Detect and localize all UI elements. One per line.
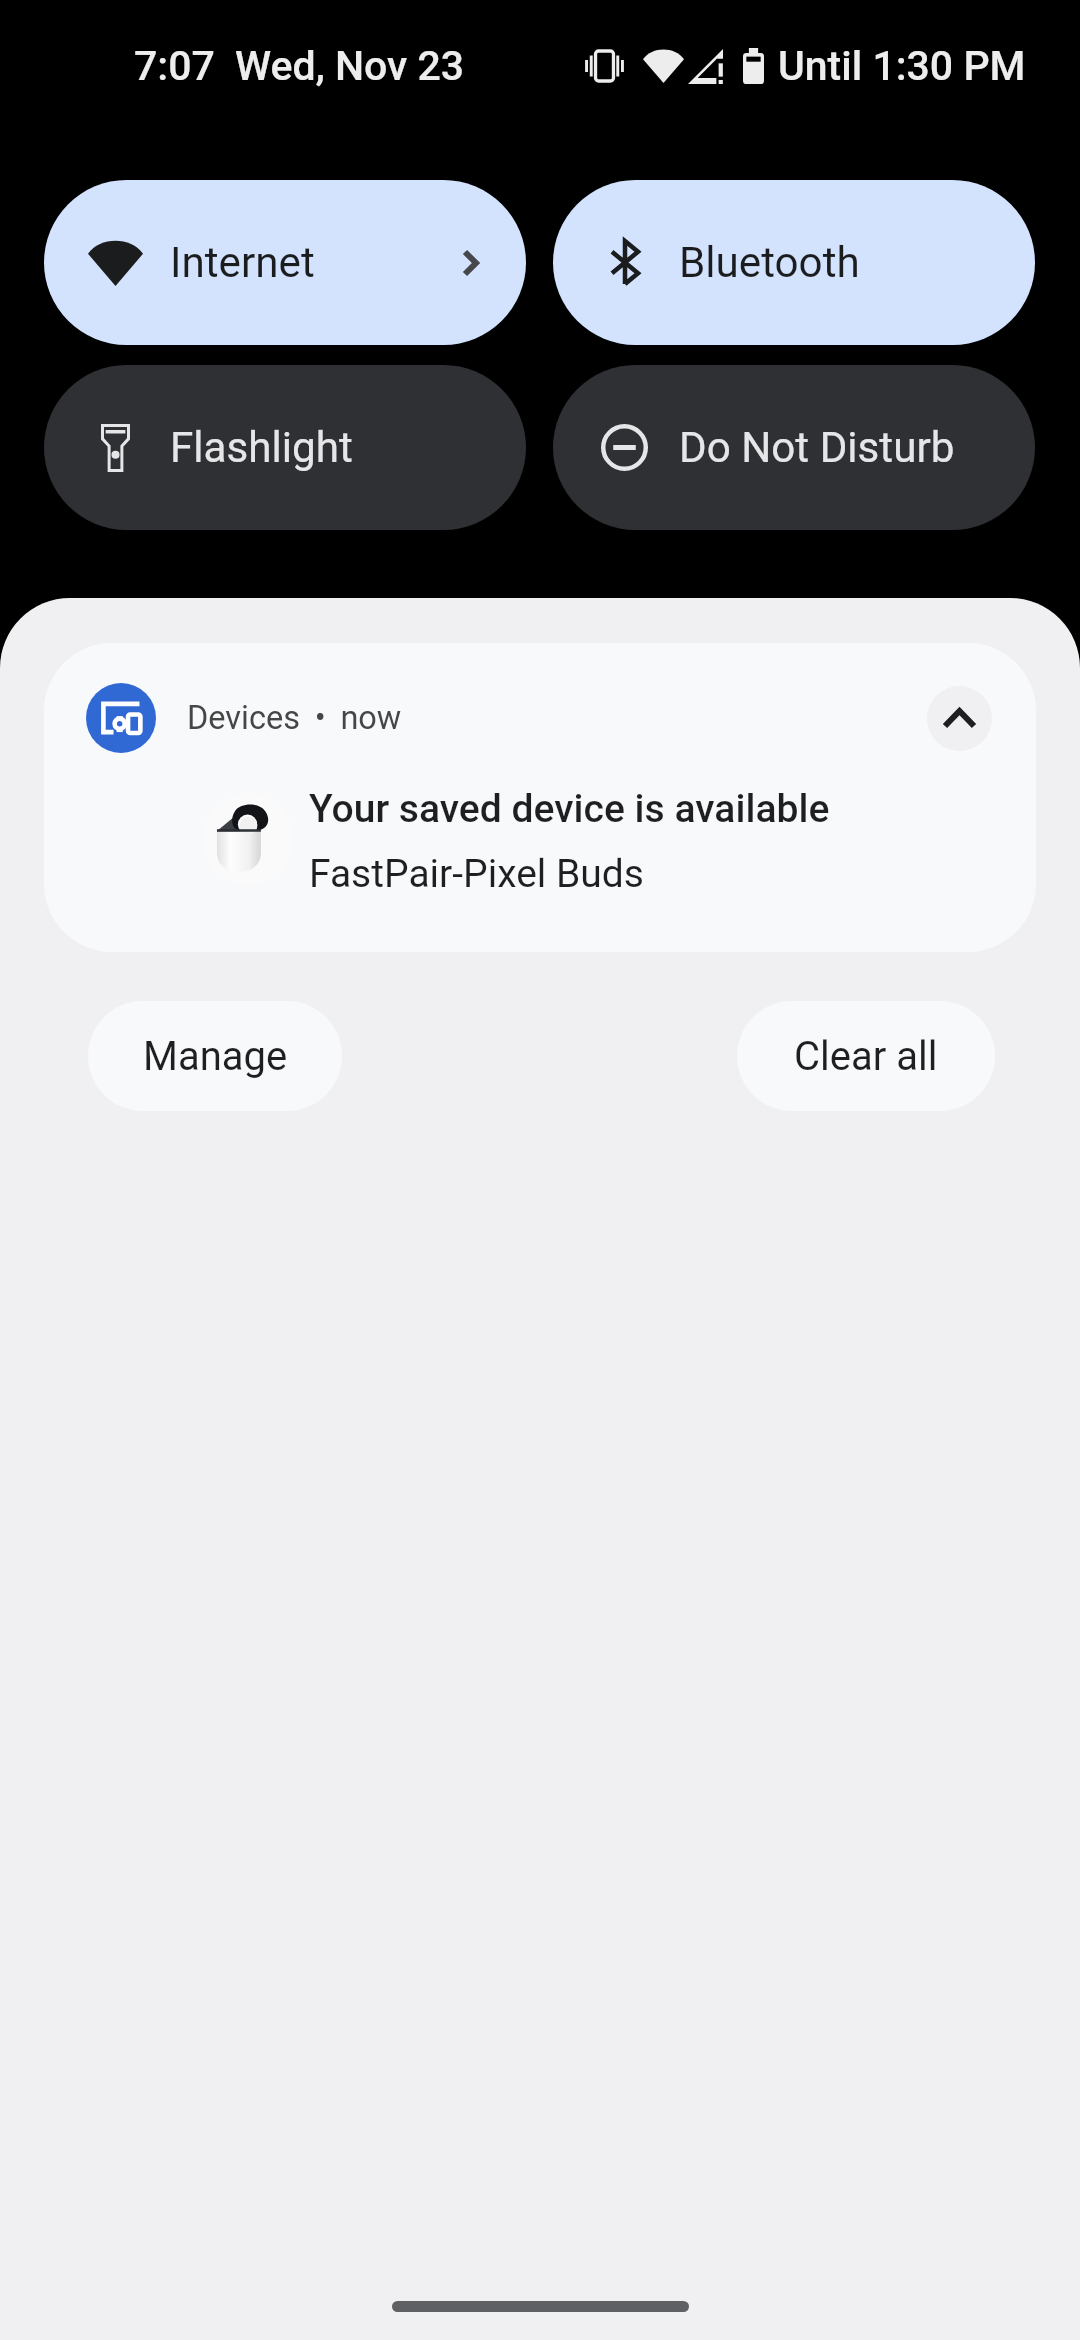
button[interactable]: Devices • now <box>44 643 1036 952</box>
staticText: Bluetooth <box>679 238 988 287</box>
staticText: Wed, Nov 23 <box>235 42 465 90</box>
staticText: FastPair-Pixel Buds <box>309 851 644 897</box>
staticText: Your saved device is available <box>309 786 830 832</box>
button[interactable]: Internet <box>44 180 526 345</box>
staticText: Internet <box>170 238 462 287</box>
staticText: 7:07 <box>134 42 215 90</box>
button[interactable]: Clear all <box>737 1001 995 1111</box>
button[interactable]: Bluetooth <box>553 180 1035 345</box>
staticText: Clear all <box>794 1033 938 1080</box>
button[interactable]: Collapse notification <box>927 686 992 751</box>
staticText: Do Not Disturb <box>679 423 988 472</box>
other: Open internet settings <box>462 249 479 277</box>
staticText: Manage <box>143 1033 288 1080</box>
button[interactable]: Manage <box>88 1001 342 1111</box>
staticText: Flashlight <box>170 423 479 472</box>
button[interactable]: Do Not Disturb <box>553 365 1035 530</box>
staticText: Devices • now <box>187 699 402 737</box>
staticText: Until 1:30 PM <box>778 42 1026 90</box>
button[interactable]: Flashlight <box>44 365 526 530</box>
